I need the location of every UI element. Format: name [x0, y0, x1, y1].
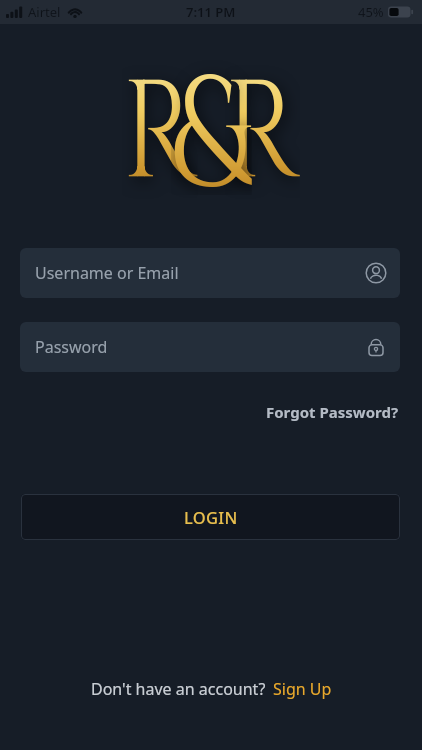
button[interactable]: Username or Email [20, 248, 400, 298]
staticText: R [122, 41, 197, 203]
staticText: Don't have an account? [91, 678, 266, 700]
button[interactable]: LOGIN [21, 494, 400, 540]
staticText: 7:11 PM [186, 3, 236, 21]
staticText: Username or Email [35, 262, 179, 284]
staticText: 45% [358, 3, 384, 21]
button[interactable]: Password [20, 322, 400, 372]
staticText: Airtel [28, 3, 61, 21]
staticText: Password [35, 336, 108, 358]
staticText: & [171, 33, 252, 195]
button[interactable]: Sign Up [273, 678, 332, 700]
staticText: LOGIN [184, 506, 238, 528]
staticText: R [225, 41, 300, 203]
button[interactable]: Forgot Password? [266, 402, 399, 422]
